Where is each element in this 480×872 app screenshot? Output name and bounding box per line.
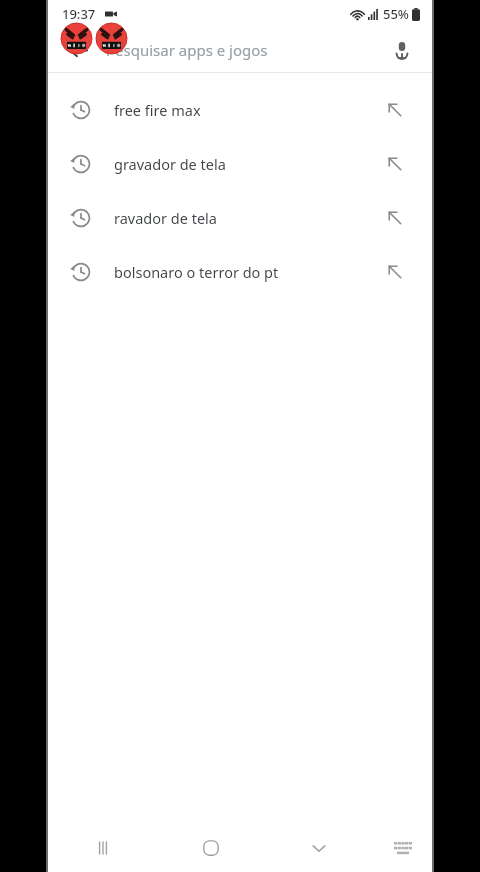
button[interactable]: Switch keyboard [373, 824, 432, 872]
button[interactable]: Voice search [382, 30, 422, 70]
button[interactable]: gravador de tela [48, 137, 432, 191]
staticText: gravador de tela [114, 154, 382, 174]
button[interactable]: Recent apps [48, 824, 157, 872]
button[interactable]: bolsonaro o terror do pt [48, 245, 432, 299]
staticText: free fire max [114, 100, 382, 120]
button[interactable]: Insert suggestion [382, 205, 408, 231]
staticText: bolsonaro o terror do pt [114, 262, 382, 282]
staticText: ravador de tela [114, 208, 382, 228]
button[interactable]: ravador de tela [48, 191, 432, 245]
staticText: 55% [383, 5, 409, 23]
button[interactable]: Pesquisar apps e jogos [98, 28, 382, 72]
button[interactable]: Insert suggestion [382, 259, 408, 285]
button[interactable]: Insert suggestion [382, 151, 408, 177]
staticText: Pesquisar apps e jogos [106, 40, 268, 60]
button[interactable]: Insert suggestion [382, 97, 408, 123]
button[interactable]: Back [58, 30, 98, 70]
button[interactable]: free fire max [48, 83, 432, 137]
button[interactable]: Home [157, 824, 265, 872]
staticText: 19:37 [62, 5, 96, 23]
button[interactable]: Hide keyboard [265, 824, 373, 872]
